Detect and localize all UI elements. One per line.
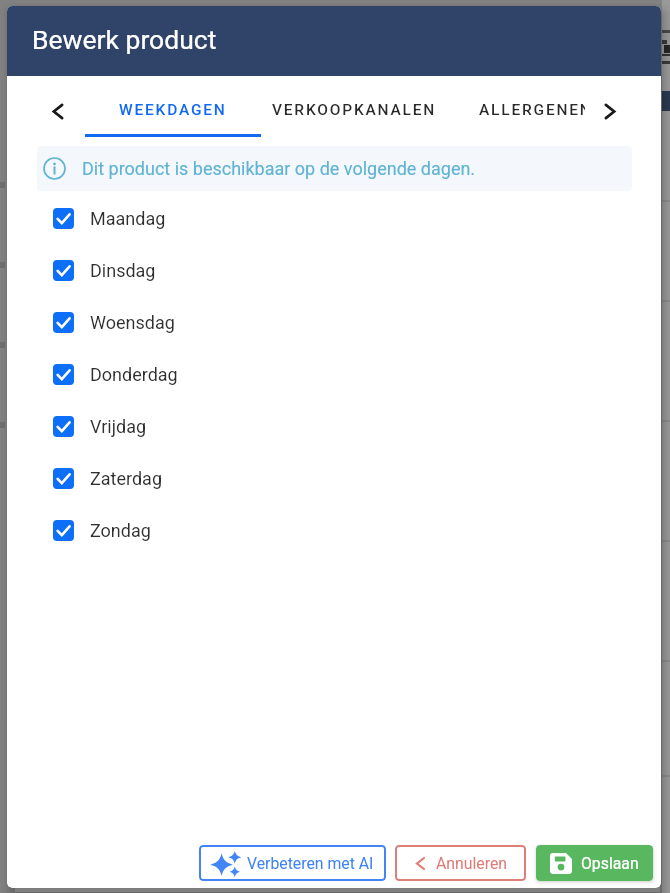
staticText: Dinsdag [90, 260, 156, 281]
button[interactable]: Woensdag [7, 296, 661, 348]
button[interactable]: Previous tabs [42, 95, 74, 127]
staticText: Woensdag [90, 312, 175, 333]
button[interactable]: Dinsdag [7, 244, 661, 296]
staticText: Opslaan [581, 854, 639, 873]
button[interactable]: Zaterdag [7, 452, 661, 504]
button[interactable]: Opslaan [536, 845, 653, 881]
staticText: Dit product is beschikbaar op de volgend… [82, 158, 476, 179]
staticText: Annuleren [436, 854, 507, 873]
button[interactable]: Verbeteren met AI [199, 845, 386, 881]
staticText: Maandag [90, 208, 166, 229]
button[interactable]: Next tabs [594, 95, 626, 127]
staticText: Verbeteren met AI [247, 854, 374, 873]
staticText: VERKOOPKANALEN [272, 101, 437, 119]
staticText: Vrijdag [90, 416, 147, 437]
staticText: Zondag [90, 520, 151, 541]
staticText: Zaterdag [90, 468, 162, 489]
staticText: Donderdag [90, 364, 178, 385]
staticText: WEEKDAGEN [119, 101, 227, 119]
button[interactable]: VERKOOPKANALEN [265, 76, 444, 146]
button[interactable]: ALLERGENEN [473, 76, 585, 146]
button[interactable]: Zondag [7, 504, 661, 556]
staticText: Bewerk product [32, 24, 217, 55]
button[interactable]: WEEKDAGEN [85, 76, 261, 146]
button[interactable]: Annuleren [395, 845, 526, 881]
button[interactable]: Maandag [7, 192, 661, 244]
button[interactable]: Vrijdag [7, 400, 661, 452]
staticText: ALLERGENEN [479, 101, 585, 119]
button[interactable]: Donderdag [7, 348, 661, 400]
